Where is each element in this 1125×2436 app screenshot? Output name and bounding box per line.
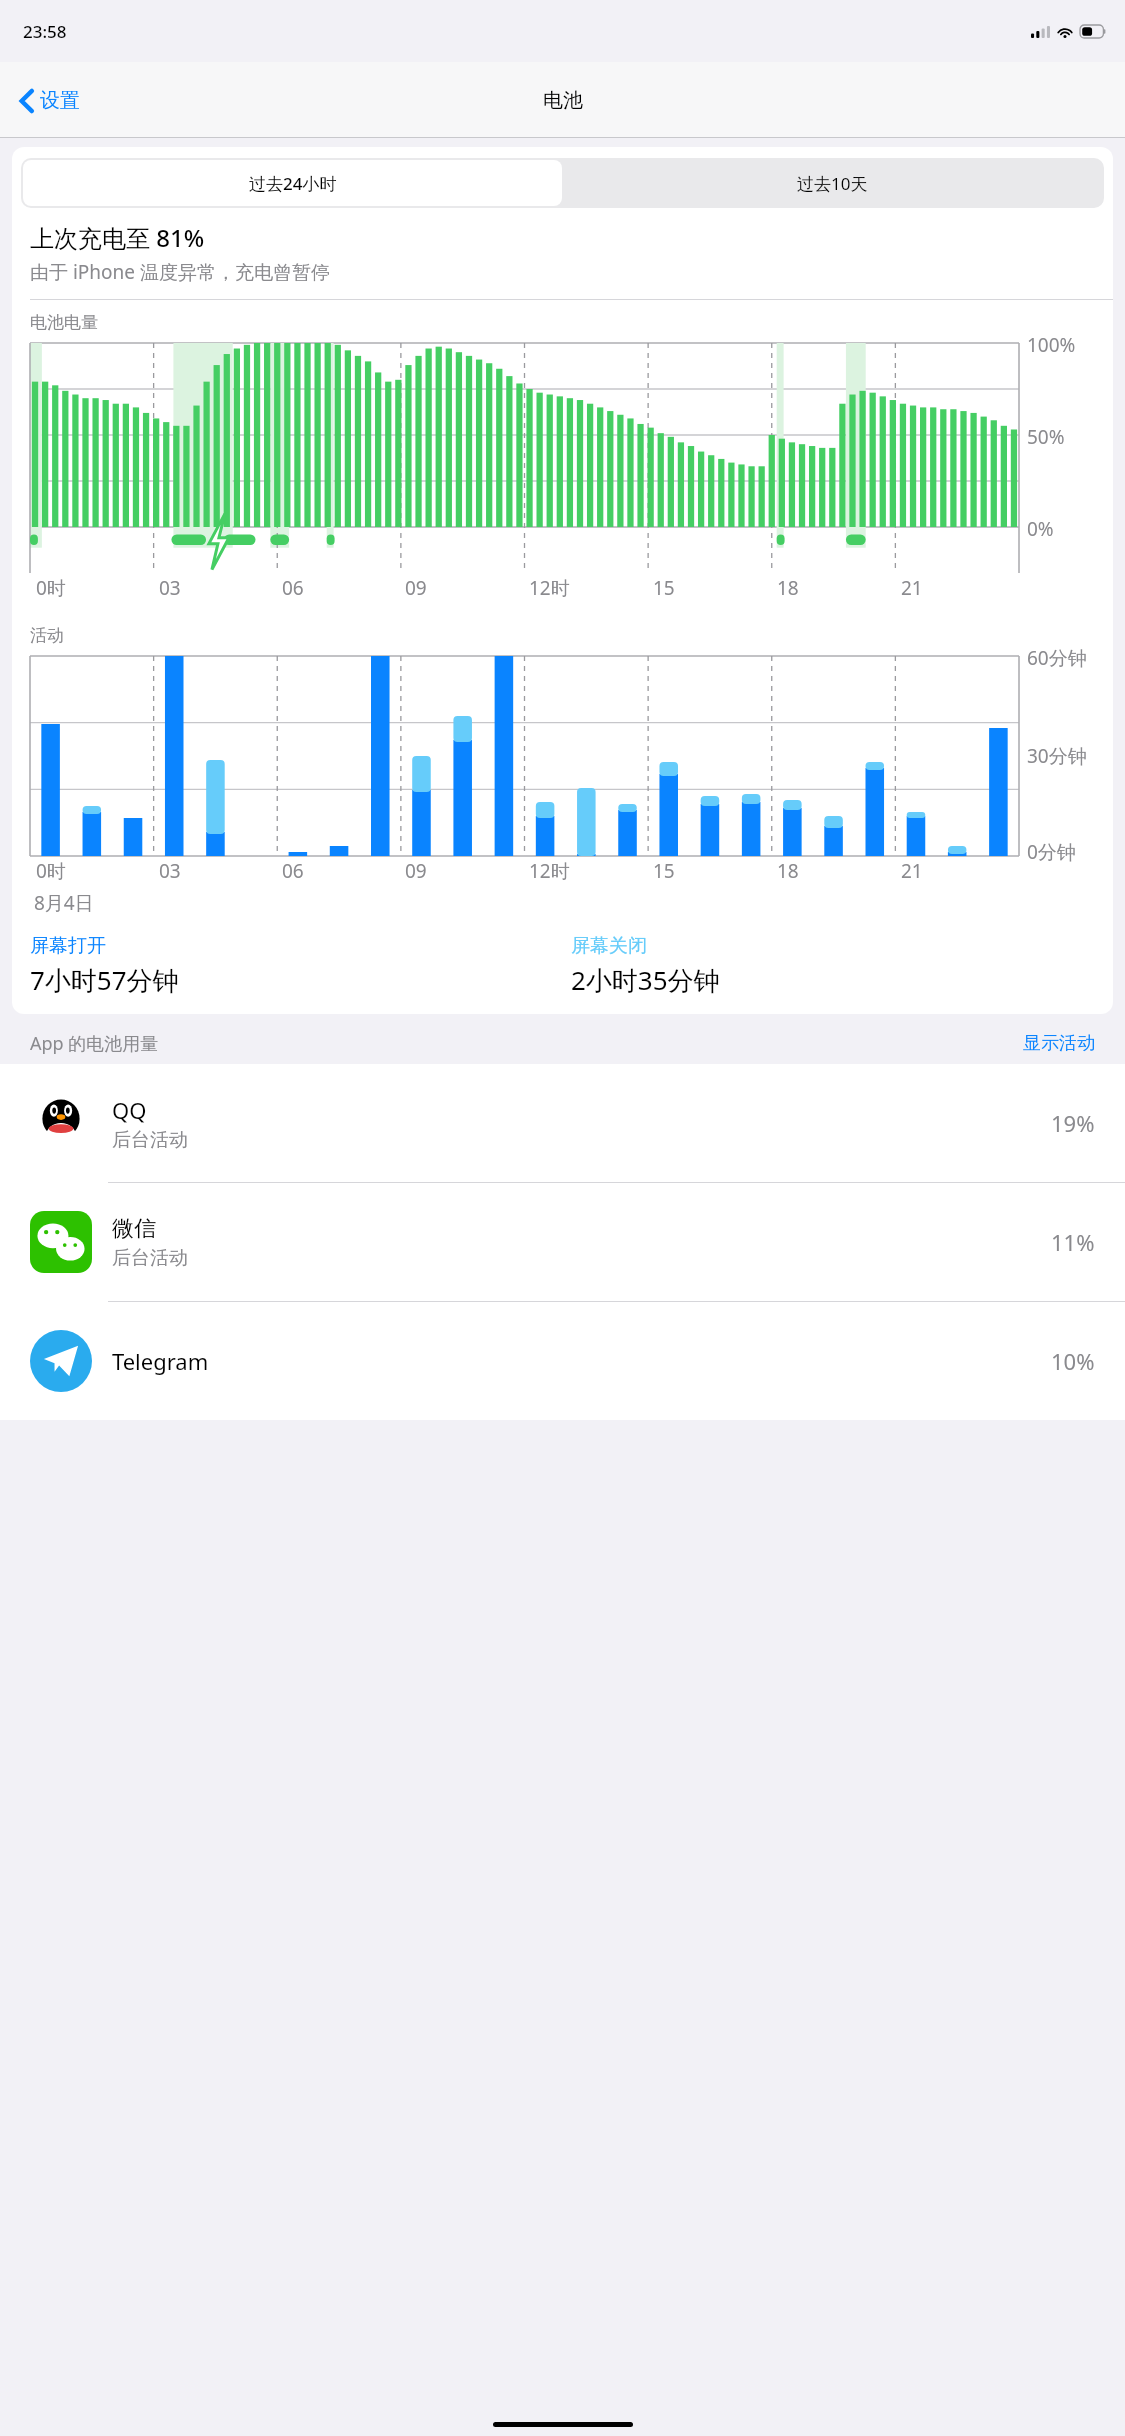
staticText: Telegram — [112, 1346, 209, 1376]
button[interactable]: 显示活动 — [1023, 1032, 1095, 1055]
staticText: 0时 — [36, 575, 66, 601]
staticText: 活动 — [30, 625, 64, 646]
staticText: 50% — [1027, 424, 1065, 450]
staticText: 06 — [282, 858, 304, 884]
staticText: 21 — [901, 858, 923, 884]
staticText: 由于 iPhone 温度异常，充电曾暂停 — [30, 259, 330, 285]
button[interactable]: 过去24小时 — [23, 160, 562, 206]
staticText: 屏幕关闭 — [571, 934, 647, 958]
staticText: QQ — [112, 1095, 147, 1125]
staticText: 19% — [1051, 1108, 1095, 1138]
button[interactable]: QQ — [0, 1064, 1125, 1182]
staticText: 微信 — [112, 1215, 156, 1243]
staticText: 100% — [1027, 332, 1076, 358]
staticText: 2小时35分钟 — [571, 962, 720, 998]
staticText: 09 — [405, 575, 427, 601]
staticText: 上次充电至 81% — [30, 221, 205, 254]
staticText: 12时 — [529, 575, 570, 601]
staticText: 18 — [777, 575, 799, 601]
staticText: 设置 — [40, 88, 80, 113]
staticText: 8月4日 — [34, 890, 94, 916]
staticText: 0分钟 — [1027, 839, 1076, 865]
button[interactable]: Telegram — [0, 1302, 1125, 1420]
staticText: 60分钟 — [1027, 645, 1087, 671]
staticText: 电池电量 — [30, 312, 98, 333]
staticText: 7小时57分钟 — [30, 962, 179, 998]
button[interactable]: 设置 — [14, 82, 86, 119]
staticText: 23:58 — [23, 20, 67, 43]
staticText: 15 — [653, 575, 675, 601]
staticText: 过去10天 — [797, 172, 868, 195]
staticText: 03 — [159, 858, 181, 884]
staticText: 屏幕打开 — [30, 934, 106, 958]
staticText: 21 — [901, 575, 923, 601]
button[interactable]: 微信 — [0, 1183, 1125, 1301]
staticText: 显示活动 — [1023, 1032, 1095, 1055]
staticText: 过去24小时 — [249, 172, 337, 195]
staticText: 电池 — [543, 88, 583, 113]
staticText: 06 — [282, 575, 304, 601]
staticText: 11% — [1051, 1227, 1095, 1257]
staticText: 15 — [653, 858, 675, 884]
staticText: 后台活动 — [112, 1128, 188, 1152]
staticText: 18 — [777, 858, 799, 884]
staticText: App 的电池用量 — [30, 1031, 1023, 1056]
staticText: 12时 — [529, 858, 570, 884]
staticText: 10% — [1051, 1346, 1095, 1376]
button[interactable]: 过去10天 — [562, 160, 1102, 206]
staticText: 09 — [405, 858, 427, 884]
staticText: 03 — [159, 575, 181, 601]
staticText: 后台活动 — [112, 1246, 188, 1270]
staticText: 0% — [1027, 516, 1054, 542]
staticText: 0时 — [36, 858, 66, 884]
staticText: 30分钟 — [1027, 743, 1087, 769]
